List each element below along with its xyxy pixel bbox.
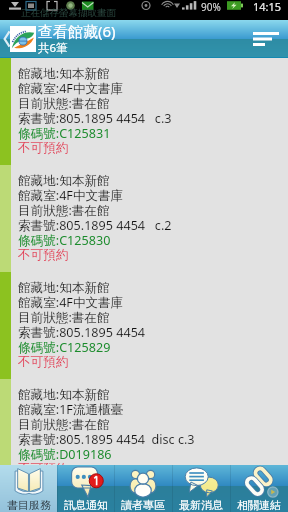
- staticText: 目前狀態:書在館: [18, 202, 110, 217]
- staticText: 正在儲存螢幕擷取畫面: [21, 7, 116, 19]
- staticText: 索書號:805.1895 4454: [18, 324, 146, 339]
- staticText: 不可預約: [18, 461, 69, 465]
- button[interactable]: 書目服務: [0, 465, 57, 512]
- staticText: 最新消息: [179, 498, 223, 511]
- staticText: 館藏室:4F中文書庫: [18, 294, 124, 309]
- staticText: 館藏地:知本新館: [18, 65, 110, 80]
- staticText: 不可預約: [18, 354, 69, 369]
- button[interactable]: 館藏地:知本新館: [0, 58, 288, 165]
- button[interactable]: 館藏地:知本新館: [0, 165, 288, 272]
- staticText: 共6筆: [38, 40, 68, 54]
- button[interactable]: 讀者專區: [114, 465, 172, 512]
- staticText: 目前狀態:書在館: [18, 309, 110, 324]
- staticText: 條碼號:C125830: [18, 232, 111, 247]
- staticText: 90%: [201, 0, 221, 14]
- staticText: 相關連結: [237, 498, 281, 511]
- button[interactable]: 訊息通知: [57, 465, 114, 512]
- staticText: 館藏室:4F中文書庫: [18, 187, 124, 202]
- staticText: 館藏室:1F流通櫃臺: [18, 401, 124, 416]
- staticText: 條碼號:D019186: [18, 446, 112, 461]
- staticText: 索書號:805.1895 4454 c.2: [18, 217, 172, 232]
- staticText: 條碼號:C125829: [18, 339, 111, 354]
- staticText: 目前狀態:書在館: [18, 95, 110, 110]
- staticText: 訊息通知: [64, 498, 108, 511]
- staticText: 讀者專區: [121, 498, 165, 511]
- staticText: 目前狀態:書在館: [18, 416, 110, 431]
- button[interactable]: 館藏地:知本新館: [0, 272, 288, 379]
- staticText: 不可預約: [18, 140, 69, 155]
- staticText: 館藏地:知本新館: [18, 172, 110, 187]
- staticText: 館藏地:知本新館: [18, 279, 110, 294]
- staticText: 條碼號:C125831: [18, 125, 111, 140]
- staticText: 14:15: [253, 0, 282, 14]
- staticText: 索書號:805.1895 4454 c.3: [18, 110, 172, 125]
- staticText: 書目服務: [7, 498, 51, 511]
- staticText: 不可預約: [18, 247, 69, 262]
- staticText: 索書號:805.1895 4454 disc c.3: [18, 431, 195, 446]
- button[interactable]: Back: [0, 20, 14, 58]
- button[interactable]: 最新消息: [172, 465, 230, 512]
- staticText: 館藏室:4F中文書庫: [18, 80, 124, 95]
- staticText: 館藏地:知本新館: [18, 386, 110, 401]
- button[interactable]: 相關連結: [230, 465, 288, 512]
- button[interactable]: 館藏地:知本新館: [0, 379, 288, 465]
- staticText: 查看館藏(6): [38, 21, 116, 40]
- button[interactable]: Sort: [244, 20, 288, 58]
